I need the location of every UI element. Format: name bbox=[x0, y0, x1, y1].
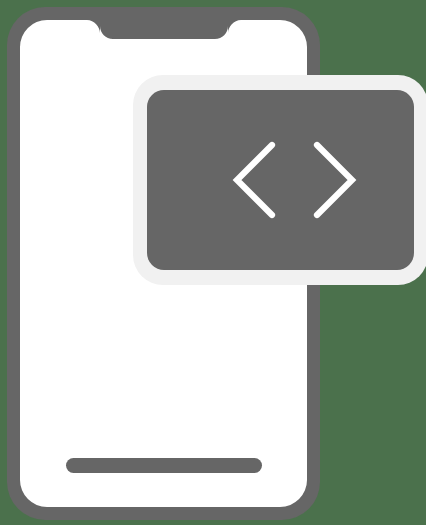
button[interactable]: Mobile app development illustration bbox=[0, 0, 426, 525]
